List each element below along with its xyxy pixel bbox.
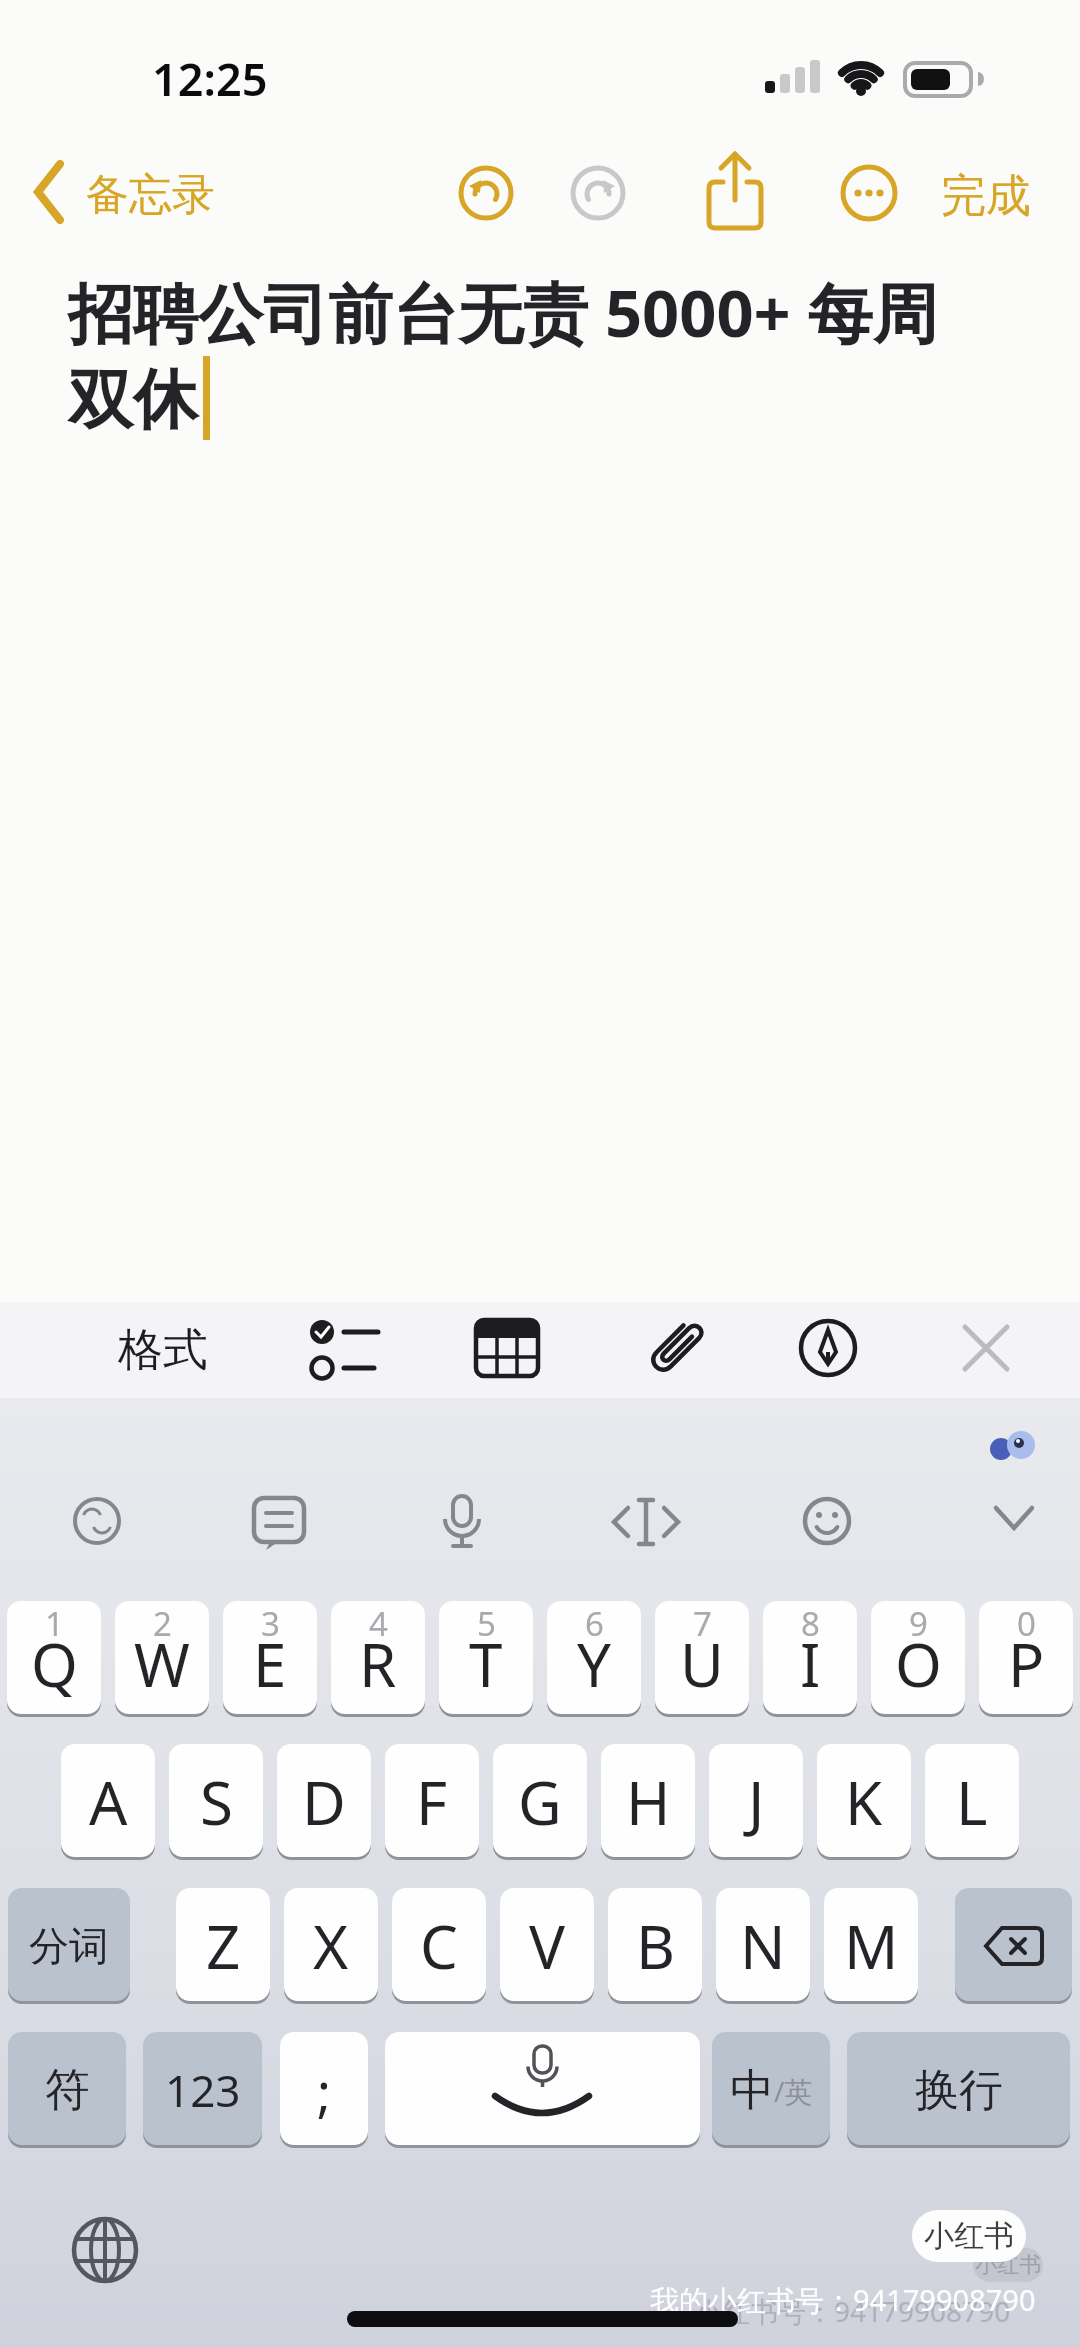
button[interactable]: 2 xyxy=(115,1601,209,1717)
button[interactable]: H xyxy=(601,1744,695,1860)
staticText: 5 xyxy=(477,1601,496,1643)
staticText: 3 xyxy=(261,1601,280,1643)
button[interactable]: 0 xyxy=(979,1601,1073,1717)
staticText: L xyxy=(956,1761,988,1843)
button[interactable] xyxy=(705,150,767,235)
button[interactable] xyxy=(570,165,626,221)
staticText: A xyxy=(89,1761,128,1843)
button[interactable]: J xyxy=(709,1744,803,1860)
button[interactable]: 8 xyxy=(763,1601,857,1717)
staticText: 6 xyxy=(585,1601,604,1643)
staticText: D xyxy=(302,1761,346,1843)
staticText: U xyxy=(680,1623,724,1705)
staticText: 完成 xyxy=(941,168,1031,218)
staticText: S xyxy=(200,1761,233,1843)
staticText: E xyxy=(253,1623,287,1705)
button[interactable]: 5 xyxy=(439,1601,533,1717)
button[interactable] xyxy=(955,1888,1072,2004)
staticText: Q xyxy=(31,1623,78,1705)
button[interactable]: C xyxy=(392,1888,486,2004)
staticText: ; xyxy=(317,2055,331,2126)
staticText: 小红书号：94179908790 xyxy=(694,2292,1011,2330)
staticText: 9 xyxy=(909,1601,928,1643)
staticText: H xyxy=(626,1761,671,1843)
button[interactable] xyxy=(252,1496,306,1552)
button[interactable] xyxy=(385,2032,700,2148)
button[interactable]: M xyxy=(824,1888,918,2004)
staticText: 8 xyxy=(801,1601,820,1643)
staticText: F xyxy=(416,1761,448,1843)
button[interactable] xyxy=(612,1496,680,1548)
staticText: 分词 xyxy=(29,1921,109,1971)
button[interactable]: 7 xyxy=(655,1601,749,1717)
staticText: J xyxy=(748,1761,765,1843)
button[interactable]: 9 xyxy=(871,1601,965,1717)
button[interactable]: ; xyxy=(280,2032,368,2148)
button[interactable]: 中 xyxy=(712,2032,830,2148)
staticText: 0 xyxy=(1017,1601,1036,1643)
staticText: I xyxy=(800,1623,821,1705)
button[interactable] xyxy=(798,1318,858,1378)
button[interactable] xyxy=(306,1316,386,1380)
button[interactable]: 分词 xyxy=(8,1888,130,2004)
staticText: 4 xyxy=(369,1601,388,1643)
staticText: 1 xyxy=(45,1601,64,1643)
staticText: T xyxy=(469,1623,503,1705)
button[interactable] xyxy=(70,2215,140,2285)
button[interactable]: 符 xyxy=(8,2032,126,2148)
button[interactable]: S xyxy=(169,1744,263,1860)
button[interactable] xyxy=(458,165,514,221)
staticText: P xyxy=(1008,1623,1045,1705)
staticText: Z xyxy=(206,1905,241,1987)
staticText: 123 xyxy=(165,2060,241,2120)
staticText: B xyxy=(636,1905,675,1987)
button[interactable] xyxy=(994,1504,1034,1534)
button[interactable]: 换行 xyxy=(847,2032,1070,2148)
staticText: 中 xyxy=(730,2063,774,2118)
button[interactable] xyxy=(962,1324,1010,1372)
staticText: V xyxy=(529,1905,565,1987)
staticText: C xyxy=(420,1905,458,1987)
button[interactable] xyxy=(640,1312,710,1384)
staticText: O xyxy=(895,1623,942,1705)
staticText: 换行 xyxy=(915,2063,1003,2118)
button[interactable]: B xyxy=(608,1888,702,2004)
button[interactable]: 1 xyxy=(7,1601,101,1717)
button[interactable]: V xyxy=(500,1888,594,2004)
button[interactable]: Z xyxy=(176,1888,270,2004)
staticText: 小红书 xyxy=(924,2217,1014,2255)
staticText: R xyxy=(359,1623,397,1705)
button[interactable]: 3 xyxy=(223,1601,317,1717)
staticText: X xyxy=(313,1905,349,1987)
button[interactable]: 4 xyxy=(331,1601,425,1717)
staticText: 符 xyxy=(45,2062,90,2119)
button[interactable]: D xyxy=(277,1744,371,1860)
staticText: 2 xyxy=(153,1601,172,1643)
staticText: 我的小红书号：94179908790 xyxy=(650,2280,1036,2320)
button[interactable] xyxy=(474,1318,540,1378)
button[interactable] xyxy=(73,1497,121,1545)
button[interactable]: 6 xyxy=(547,1601,641,1717)
button[interactable] xyxy=(840,164,898,222)
staticText: K xyxy=(845,1761,883,1843)
staticText: Y xyxy=(577,1623,611,1705)
button[interactable] xyxy=(803,1497,851,1545)
staticText: M xyxy=(844,1905,899,1987)
staticText: 7 xyxy=(693,1601,712,1643)
button[interactable]: A xyxy=(61,1744,155,1860)
staticText: G xyxy=(518,1761,562,1843)
button[interactable]: L xyxy=(925,1744,1019,1860)
button[interactable] xyxy=(30,160,70,224)
staticText: 备忘录 xyxy=(86,168,215,218)
staticText: 招聘公司前台无责 5000+ 每周 双休 xyxy=(68,268,938,442)
button[interactable]: X xyxy=(284,1888,378,2004)
button[interactable]: G xyxy=(493,1744,587,1860)
button[interactable]: F xyxy=(385,1744,479,1860)
staticText: /英 xyxy=(774,2072,813,2110)
staticText: W xyxy=(134,1623,190,1705)
button[interactable]: K xyxy=(817,1744,911,1860)
staticText: 小红书 xyxy=(975,2251,1041,2279)
button[interactable]: 123 xyxy=(143,2032,262,2148)
button[interactable] xyxy=(440,1494,484,1552)
button[interactable]: N xyxy=(716,1888,810,2004)
